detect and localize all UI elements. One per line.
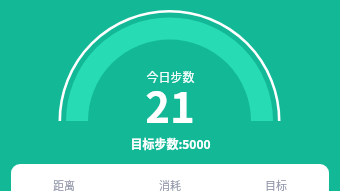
- staticText: 目标: [265, 177, 287, 191]
- staticText: 距离: [53, 177, 75, 191]
- staticText: 目标步数:5000: [130, 135, 211, 152]
- button[interactable]: 消耗: [117, 164, 223, 191]
- other: Daily step progress ring: [0, 0, 340, 191]
- staticText: 今日步数: [146, 68, 195, 85]
- button[interactable]: 距离: [11, 164, 117, 191]
- staticText: 消耗: [159, 177, 181, 191]
- button[interactable]: 目标: [223, 164, 329, 191]
- staticText: 21: [145, 74, 195, 135]
